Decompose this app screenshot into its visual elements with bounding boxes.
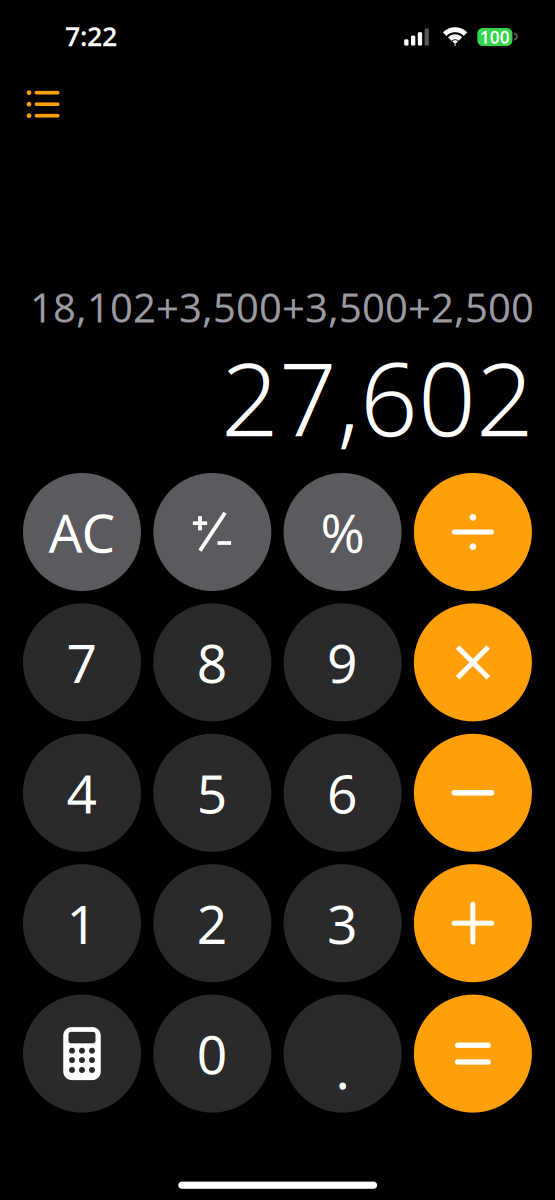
staticText: 9 [327, 627, 358, 698]
button[interactable]: 8 [153, 603, 271, 721]
button[interactable]: Equals [414, 995, 532, 1113]
button[interactable]: Calculator [23, 995, 141, 1113]
staticText: 27,602 [221, 330, 534, 464]
staticText: 8 [197, 627, 228, 698]
button[interactable]: 4 [23, 734, 141, 852]
button[interactable]: 5 [153, 734, 271, 852]
button[interactable]: AC [23, 473, 141, 591]
staticText: 7 [66, 627, 97, 698]
button[interactable]: 9 [284, 603, 402, 721]
staticText: 1 [66, 888, 97, 959]
staticText: 2 [197, 888, 228, 959]
staticText: 5 [197, 757, 228, 828]
button[interactable]: 3 [284, 864, 402, 982]
button[interactable]: % [284, 473, 402, 591]
staticText: 0 [197, 1018, 228, 1089]
button[interactable]: 2 [153, 864, 271, 982]
staticText: . [336, 1033, 350, 1104]
staticText: % [321, 497, 365, 567]
button[interactable]: Plus or minus [153, 473, 271, 591]
staticText: 3 [327, 888, 358, 959]
button[interactable]: Subtract [414, 734, 532, 852]
button[interactable]: 7 [23, 603, 141, 721]
staticText: 7:22 [65, 18, 117, 54]
button[interactable]: 0 [153, 995, 271, 1113]
staticText: 6 [327, 757, 358, 828]
button[interactable]: 6 [284, 734, 402, 852]
button[interactable]: History [14, 79, 73, 129]
staticText: 100 [480, 25, 510, 48]
button[interactable]: Multiply [414, 603, 532, 721]
staticText: 4 [66, 757, 97, 828]
button[interactable]: Add [414, 864, 532, 982]
staticText: 18,102+3,500+3,500+2,500 [30, 280, 534, 333]
button[interactable]: . [284, 995, 402, 1113]
staticText: AC [48, 497, 115, 567]
button[interactable]: 1 [23, 864, 141, 982]
button[interactable]: Divide [414, 473, 532, 591]
